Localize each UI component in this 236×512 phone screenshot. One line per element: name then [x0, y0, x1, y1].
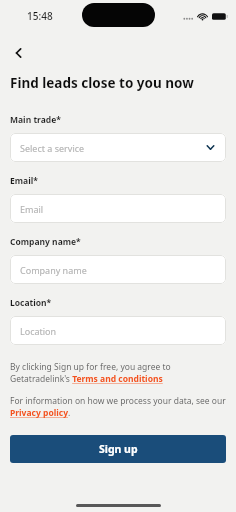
button[interactable]: Location: [10, 316, 226, 345]
staticText: Find leads close to you now: [10, 74, 194, 92]
staticText: For information on how we process your d…: [10, 395, 226, 419]
staticText: Main trade*: [10, 114, 61, 126]
button[interactable]: Email: [10, 194, 226, 223]
button[interactable]: Company name: [10, 255, 226, 284]
staticText: Company name: [20, 264, 216, 276]
button[interactable]: Back: [4, 38, 34, 68]
staticText: Select a service: [20, 142, 205, 154]
staticText: Location*: [10, 297, 52, 309]
staticText: Company name*: [10, 236, 81, 248]
staticText: Sign up: [99, 442, 138, 456]
staticText: Email*: [10, 175, 38, 187]
button[interactable]: Select a service: [10, 133, 226, 162]
staticText: Location: [20, 325, 216, 337]
staticText: 15:48: [27, 9, 53, 23]
staticText: By clicking Sign up for free, you agree …: [10, 361, 226, 385]
button[interactable]: Sign up: [10, 435, 226, 463]
staticText: Email: [20, 203, 216, 215]
